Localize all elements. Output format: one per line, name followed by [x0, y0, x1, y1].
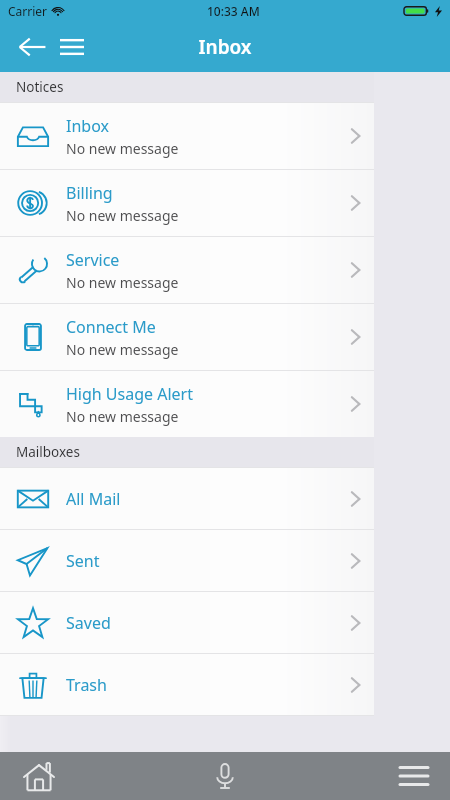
staticText: Trash: [66, 674, 107, 696]
button[interactable]: Inbox: [0, 103, 374, 169]
staticText: No new message: [66, 273, 179, 292]
button[interactable]: Home: [0, 752, 150, 800]
staticText: All Mail: [66, 488, 121, 510]
button[interactable]: Service: [0, 237, 374, 303]
button[interactable]: Menu: [300, 752, 450, 800]
button[interactable]: Back: [12, 27, 52, 67]
staticText: No new message: [66, 139, 179, 158]
button[interactable]: Billing: [0, 170, 374, 236]
staticText: Carrier: [8, 3, 48, 19]
staticText: High Usage Alert: [66, 383, 193, 405]
button[interactable]: All Mail: [0, 468, 374, 529]
button[interactable]: Voice: [150, 752, 300, 800]
staticText: Inbox: [66, 115, 109, 137]
staticText: 10:33 AM: [207, 3, 260, 19]
staticText: Inbox: [198, 34, 252, 60]
button[interactable]: Connect Me: [0, 304, 374, 370]
button[interactable]: Menu: [52, 27, 92, 67]
staticText: Connect Me: [66, 316, 156, 338]
staticText: Mailboxes: [16, 443, 80, 461]
staticText: Sent: [66, 550, 100, 572]
staticText: Notices: [16, 78, 64, 96]
button[interactable]: Trash: [0, 654, 374, 715]
button[interactable]: High Usage Alert: [0, 371, 374, 437]
button[interactable]: Sent: [0, 530, 374, 591]
staticText: No new message: [66, 340, 179, 359]
staticText: Service: [66, 249, 120, 271]
staticText: Billing: [66, 182, 113, 204]
button[interactable]: Saved: [0, 592, 374, 653]
staticText: No new message: [66, 206, 179, 225]
staticText: Saved: [66, 612, 111, 634]
staticText: No new message: [66, 407, 179, 426]
